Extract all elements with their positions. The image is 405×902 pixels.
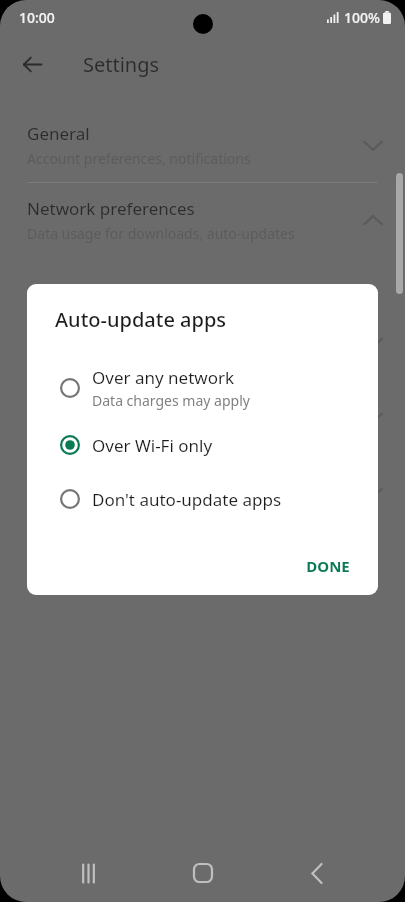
button[interactable]: Back bbox=[291, 847, 343, 899]
button[interactable]: Network preferences bbox=[0, 183, 405, 257]
staticText: Play Store, build version, device certif… bbox=[27, 496, 316, 515]
staticText: Data charges may apply bbox=[92, 391, 250, 410]
staticText: Over Wi-Fi only bbox=[92, 434, 213, 457]
staticText: Over any network bbox=[92, 366, 235, 389]
button[interactable]: Home bbox=[177, 847, 229, 899]
button[interactable]: Over any network bbox=[27, 358, 378, 418]
button[interactable]: Don't auto-update apps bbox=[27, 472, 378, 526]
button[interactable]: Family bbox=[0, 380, 405, 454]
staticText: Settings bbox=[83, 51, 160, 78]
staticText: About bbox=[27, 469, 76, 492]
staticText: 100% bbox=[344, 8, 380, 27]
button[interactable]: Authentication bbox=[0, 305, 405, 379]
staticText: 10:00 bbox=[19, 8, 55, 27]
button[interactable]: Back bbox=[13, 45, 51, 83]
staticText: Family bbox=[27, 394, 79, 417]
button[interactable]: General bbox=[0, 108, 405, 182]
staticText: Auto-update apps bbox=[55, 306, 227, 333]
staticText: Don't auto-update apps bbox=[92, 488, 282, 511]
button[interactable]: Over Wi-Fi only bbox=[27, 418, 378, 472]
staticText: Authentication bbox=[27, 319, 145, 342]
staticText: General bbox=[27, 122, 90, 145]
button[interactable]: Recents bbox=[62, 847, 114, 899]
staticText: Parental control, parent guide bbox=[27, 421, 224, 440]
staticText: Network preferences bbox=[27, 197, 195, 220]
staticText: Account preferences, notifications bbox=[27, 149, 251, 168]
button[interactable]: DONE bbox=[292, 547, 364, 585]
button[interactable]: About bbox=[0, 455, 405, 529]
staticText: DONE bbox=[306, 556, 350, 576]
staticText: Data usage for downloads, auto-updates bbox=[27, 224, 295, 243]
